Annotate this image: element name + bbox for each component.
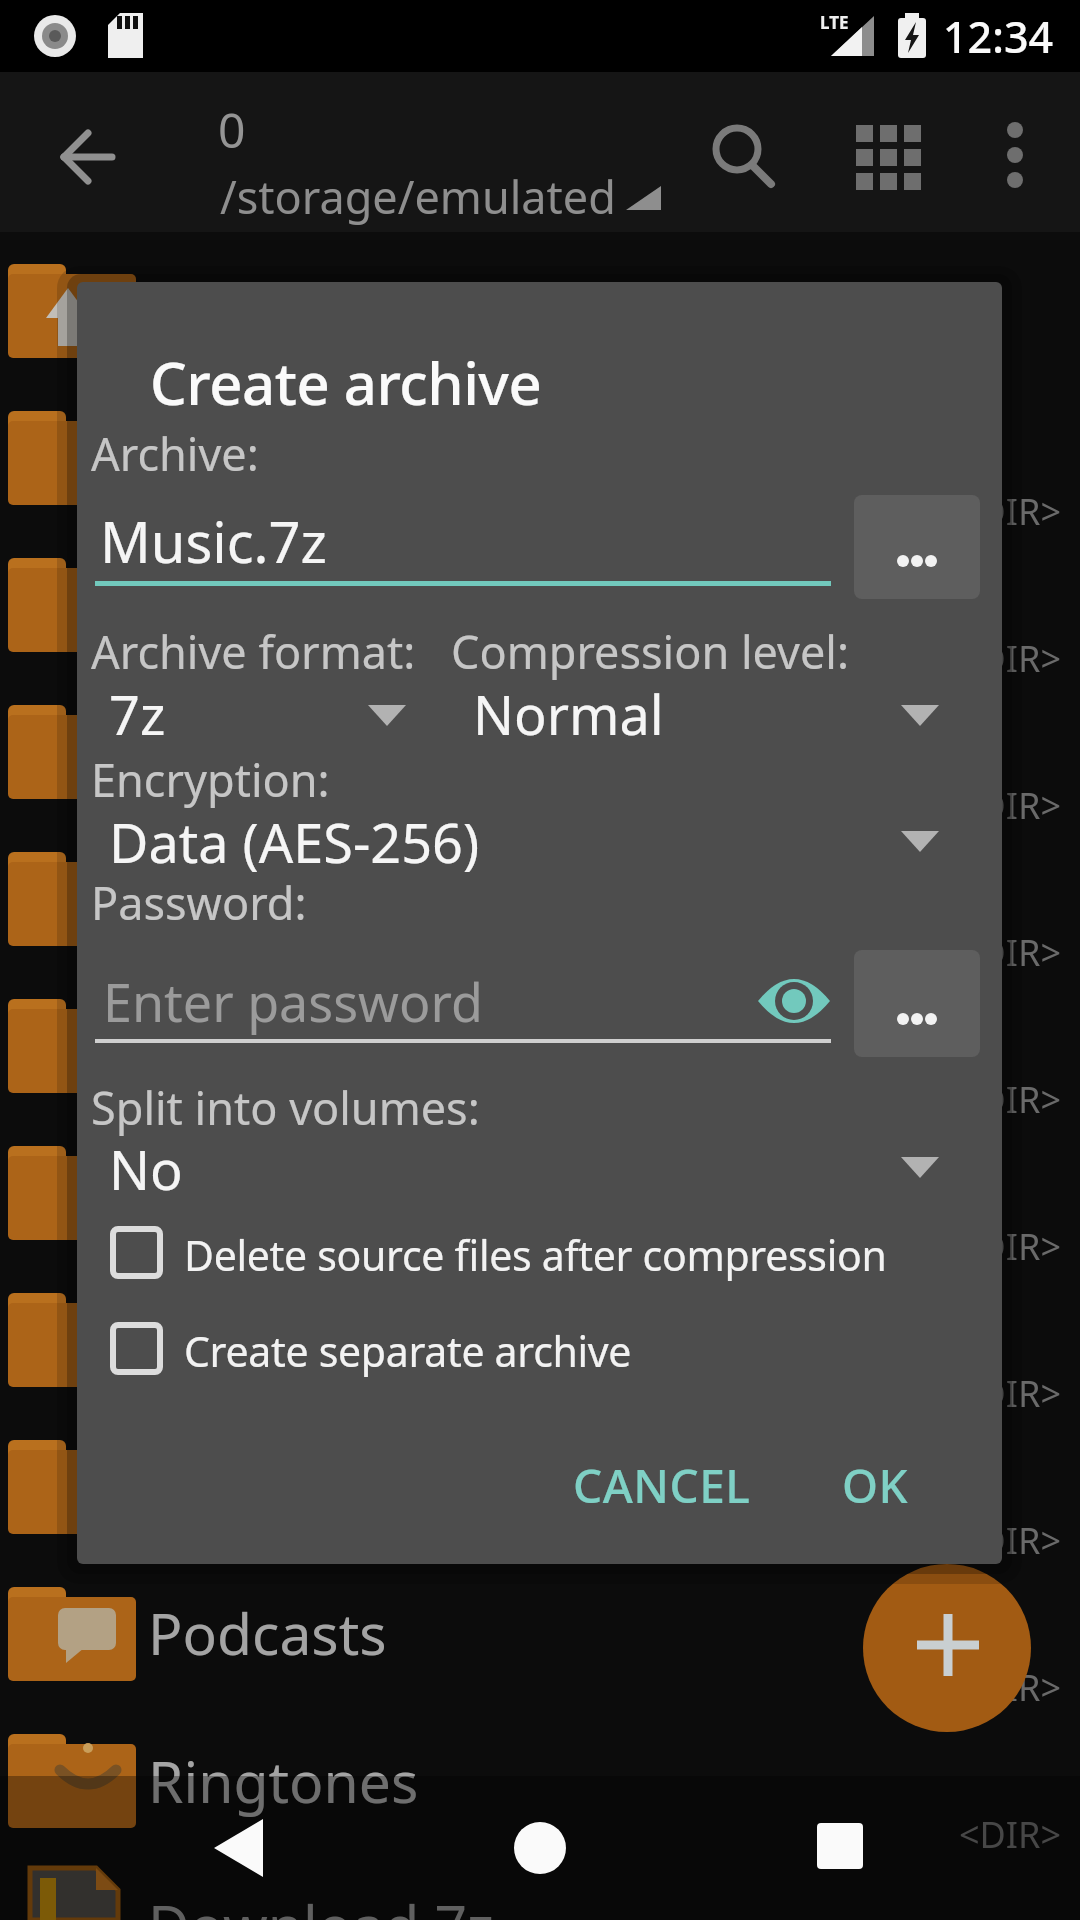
staticText: <DIR> [959,1369,1062,1418]
staticText: Archive format: [91,621,416,682]
staticText: /storage/emulated [220,166,616,227]
staticText: Create separate archive [184,1323,632,1379]
button[interactable] [95,1135,940,1205]
button[interactable]: CANCEL [547,1435,777,1535]
staticText: <DIR> [959,1663,1062,1712]
staticText: Delete source files after compression [184,1227,887,1283]
staticText: Enter password [103,966,483,1037]
staticText: Ringtones [148,1742,419,1820]
staticText: <DIR> [959,1222,1062,1271]
staticText: <DIR> [959,1075,1062,1124]
button[interactable] [95,500,835,590]
staticText: 12:34 [943,7,1054,66]
staticText: Password: [91,872,307,933]
button[interactable] [95,810,940,880]
button[interactable] [95,680,425,750]
staticText: Split into volumes: [91,1077,480,1138]
staticText: CANCEL [573,1454,751,1517]
staticText: OK [842,1454,909,1517]
button[interactable] [180,1790,300,1910]
staticText: Music.7z [100,503,327,579]
staticText: 7z [109,677,166,751]
staticText: Data (AES-256) [109,805,480,879]
button[interactable] [863,1564,1031,1732]
staticText: Compression level: [451,621,849,682]
staticText: <DIR> [959,1810,1062,1859]
staticText: Download.7z [148,1886,494,1920]
button[interactable] [95,1215,925,1295]
staticText: No [109,1132,183,1206]
button[interactable] [854,495,980,599]
staticText: Encryption: [91,749,330,810]
button[interactable] [95,960,735,1045]
button[interactable] [690,105,785,200]
staticText: Normal [473,677,664,751]
button[interactable] [965,105,1060,200]
staticText: 0 [218,97,246,162]
button[interactable] [460,680,940,750]
staticText: Archive: [91,423,259,484]
staticText: <DIR> [959,487,1062,536]
staticText: LTE [820,11,849,34]
staticText: <DIR> [959,1516,1062,1565]
button[interactable] [840,105,935,200]
button[interactable] [95,1310,925,1390]
button[interactable]: OK [805,1435,945,1535]
staticText: Create archive [150,343,542,422]
button[interactable] [40,110,135,205]
button[interactable] [750,965,835,1040]
staticText: <DIR> [959,634,1062,683]
button[interactable] [780,1790,900,1910]
button[interactable] [480,1790,600,1910]
button[interactable] [854,950,980,1057]
staticText: Podcasts [148,1594,387,1672]
staticText: <DIR> [959,928,1062,977]
button[interactable] [190,90,670,220]
staticText: <DIR> [959,781,1062,830]
